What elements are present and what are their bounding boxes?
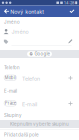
staticText: Jméno <box>11 29 28 35</box>
button[interactable]: Jméno <box>0 26 79 37</box>
staticText: Přidat další pole <box>4 132 39 137</box>
button[interactable]: Back <box>1 5 11 17</box>
button[interactable]: Klepnutím vyberte skupinu <box>0 120 79 128</box>
button[interactable]: Mobil <box>0 74 79 84</box>
staticText: Telefon <box>22 76 40 82</box>
staticText: E-mail <box>4 88 17 94</box>
staticText: G <box>30 52 33 56</box>
button[interactable]: Mobil <box>4 75 16 81</box>
button[interactable]: Práce <box>0 100 79 110</box>
button[interactable]: Práce <box>4 100 16 106</box>
staticText: 14:28 <box>64 0 74 5</box>
staticText: Jméno <box>4 20 20 25</box>
staticText: Skupiny <box>4 113 21 118</box>
button[interactable] <box>0 37 79 48</box>
button[interactable]: Save <box>67 5 77 17</box>
staticText: E-mail <box>22 101 37 108</box>
staticText: Klepnutím vyberte skupinu <box>10 121 69 127</box>
staticText: Práce <box>5 101 16 106</box>
staticText: Nový kontakt <box>10 9 44 15</box>
staticText: Google <box>34 51 49 57</box>
staticText: Telefon <box>4 65 20 70</box>
button[interactable]: Přidat další pole <box>0 130 79 140</box>
staticText: Mobil <box>5 75 16 80</box>
button[interactable]: G <box>27 51 52 57</box>
